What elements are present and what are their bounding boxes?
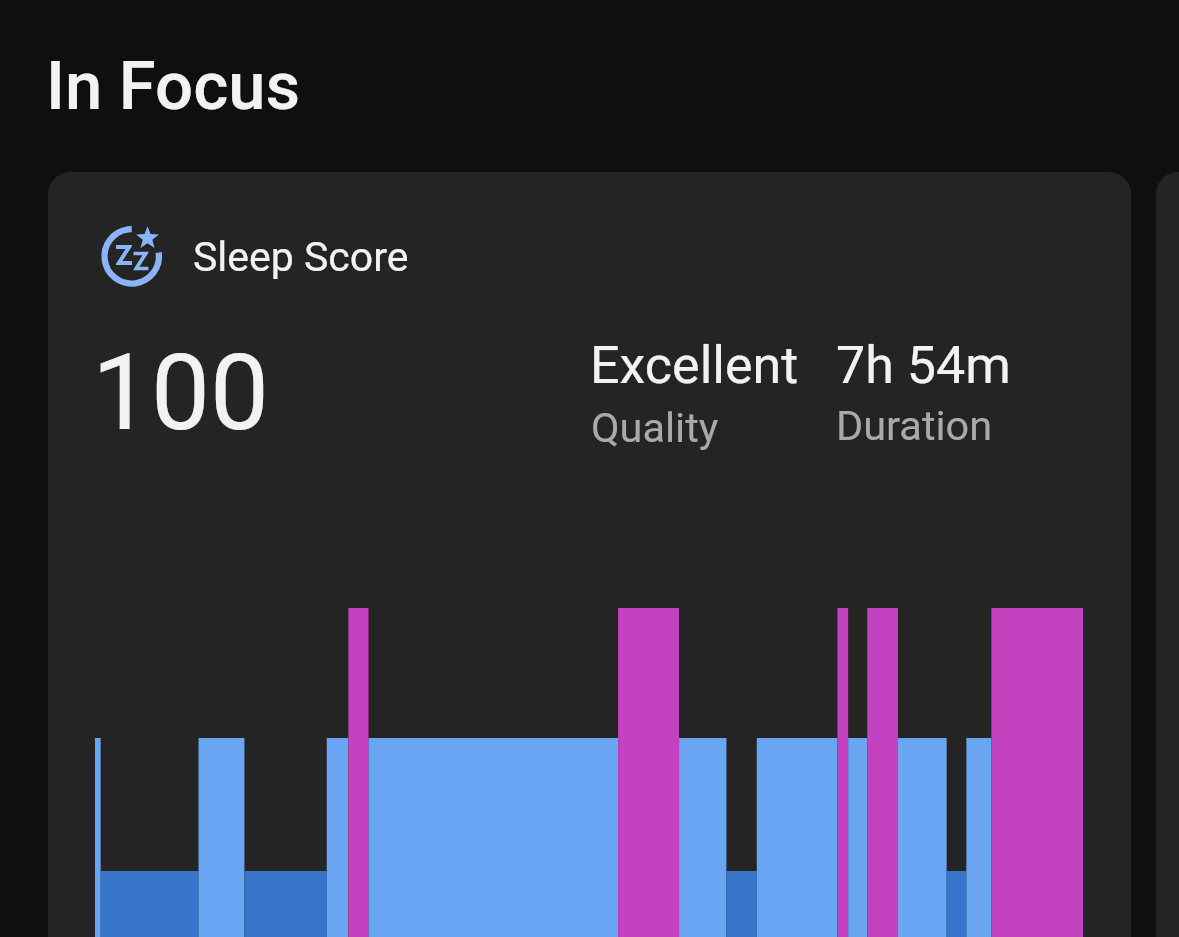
button[interactable]: Sleep Score [48, 172, 1131, 937]
staticText: Duration [836, 401, 993, 450]
staticText: Quality [591, 403, 719, 452]
staticText: Sleep Score [193, 233, 409, 281]
staticText: Excellent [590, 335, 799, 396]
staticText: 7h 54m [836, 335, 1011, 396]
staticText: In Focus [46, 47, 301, 126]
staticText: 100 [92, 332, 270, 455]
other: Sleep Score [98, 222, 166, 290]
button[interactable]: Sleep Score [98, 222, 409, 290]
